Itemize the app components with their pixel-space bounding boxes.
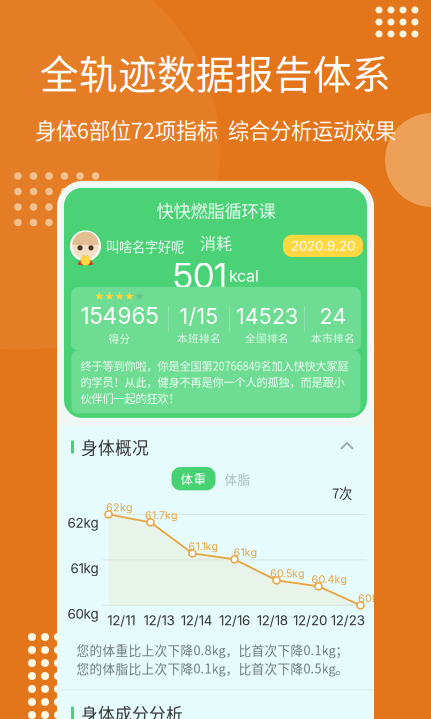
- staticText: 61kg: [70, 560, 98, 576]
- staticText: 12/18: [257, 612, 288, 628]
- staticText: 您的体重比上次下降0.8kg，比首次下降0.1kg；您的体脂比上次下降0.1kg…: [76, 640, 348, 677]
- staticText: 60kg: [358, 592, 385, 605]
- staticText: 全国排名: [245, 330, 289, 345]
- staticText: 2020.9.20: [291, 238, 355, 254]
- staticText: 24: [319, 303, 346, 329]
- staticText: 终于等到你啦，你是全国第20766849名加入快快大家庭的学员！从此，健身不再是…: [80, 358, 348, 406]
- staticText: 61.1kg: [188, 540, 218, 553]
- button[interactable]: 体脂: [215, 467, 259, 490]
- staticText: 得分: [108, 330, 130, 346]
- staticText: kcal: [229, 266, 259, 286]
- staticText: 12/13: [144, 612, 175, 628]
- staticText: 身体概况: [81, 435, 149, 459]
- button[interactable]: 体重: [171, 467, 215, 490]
- staticText: 12/14: [181, 612, 213, 628]
- staticText: 60.4kg: [311, 573, 347, 586]
- staticText: 12/20: [293, 612, 327, 628]
- staticText: 12/11: [107, 612, 135, 628]
- staticText: 本班排名: [177, 330, 221, 345]
- staticText: 身体成分分析: [81, 701, 183, 719]
- staticText: 体脂: [224, 469, 250, 488]
- staticText: 叫啥名字好呢: [106, 236, 184, 255]
- staticText: 61.7kg: [145, 509, 178, 522]
- staticText: 12/23: [331, 612, 365, 628]
- staticText: 62kg: [106, 501, 133, 514]
- staticText: 消耗: [200, 231, 232, 254]
- staticText: 62kg: [67, 515, 98, 531]
- staticText: 12/16: [219, 612, 250, 628]
- staticText: 61kg: [233, 546, 257, 559]
- staticText: 本市排名: [311, 330, 355, 345]
- staticText: 501: [173, 255, 227, 297]
- button[interactable]: Collapse section: [335, 437, 360, 457]
- staticText: 快快燃脂循环课: [156, 197, 275, 222]
- staticText: 身体6部位72项指标 综合分析运动效果: [35, 114, 396, 145]
- button[interactable]: 2020.9.20: [283, 235, 363, 257]
- staticText: 1/15: [179, 303, 218, 329]
- staticText: 60kg: [67, 606, 98, 622]
- staticText: 14523: [236, 303, 298, 329]
- staticText: 体重: [180, 469, 206, 488]
- staticText: 7次: [332, 483, 352, 502]
- staticText: 60.5kg: [270, 567, 305, 580]
- staticText: 154965: [80, 302, 158, 329]
- staticText: 全轨迹数据报告体系: [40, 44, 391, 100]
